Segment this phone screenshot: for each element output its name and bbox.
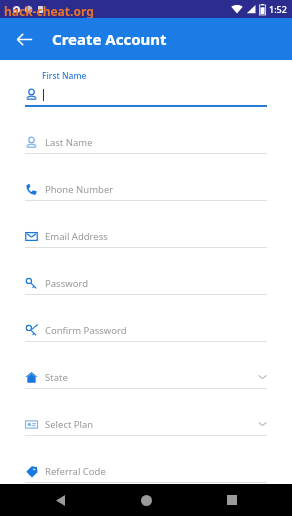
staticText: Password <box>45 277 88 290</box>
button[interactable]: Back <box>10 25 38 53</box>
button[interactable]: Recents <box>220 488 244 512</box>
staticText: 1:52 <box>269 3 287 15</box>
button[interactable]: Password <box>0 274 292 321</box>
button[interactable]: State <box>0 368 292 415</box>
staticText: Select Plan <box>45 418 94 431</box>
staticText: Referral Code <box>45 465 106 478</box>
button[interactable]: Back <box>48 488 72 512</box>
staticText: hack-cheat.org <box>4 3 94 19</box>
button[interactable]: Confirm Password <box>0 321 292 368</box>
staticText: Create Account <box>52 29 167 49</box>
staticText: Email Address <box>45 230 108 243</box>
button[interactable]: Select Plan <box>0 415 292 462</box>
staticText: First Name <box>42 70 87 82</box>
staticText: Last Name <box>45 136 93 149</box>
staticText: State <box>45 371 68 384</box>
button[interactable]: Referral Code <box>0 462 292 484</box>
staticText: Confirm Password <box>45 324 127 337</box>
button[interactable]: First Name <box>0 70 292 133</box>
staticText: Phone Number <box>45 183 114 196</box>
button[interactable]: Last Name <box>0 133 292 180</box>
button[interactable]: Phone Number <box>0 180 292 227</box>
button[interactable]: Home <box>134 488 158 512</box>
button[interactable]: Email Address <box>0 227 292 274</box>
